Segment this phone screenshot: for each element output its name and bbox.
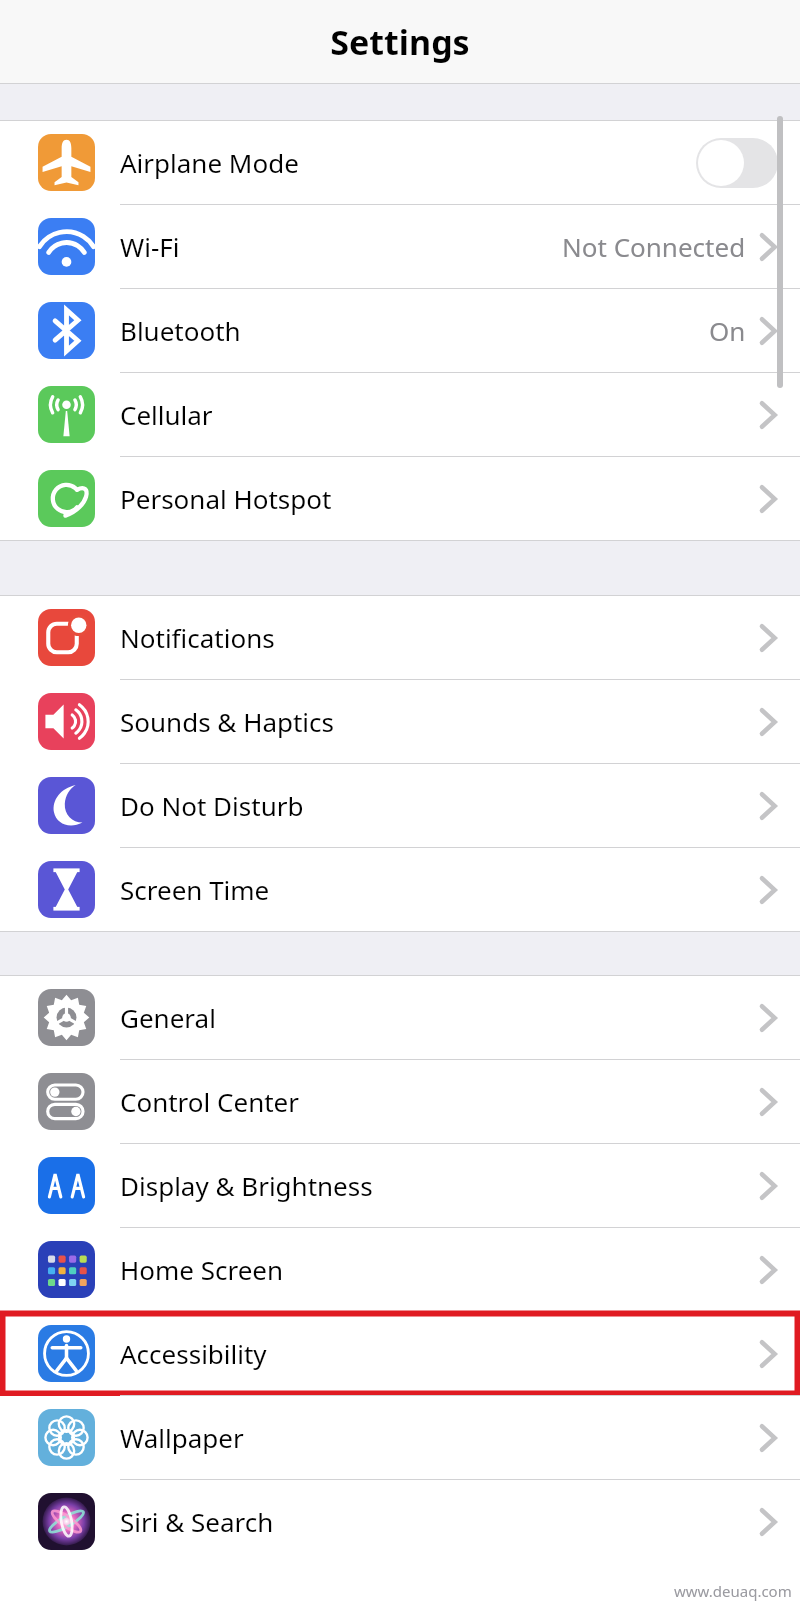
staticText: Not Connected <box>562 229 746 264</box>
staticText: Cellular <box>120 397 213 432</box>
staticText: Wallpaper <box>120 1420 244 1455</box>
button[interactable]: Home Screen <box>0 1228 800 1311</box>
staticText: Settings <box>330 19 470 65</box>
staticText: Home Screen <box>120 1252 284 1287</box>
button[interactable]: Cellular <box>0 373 800 456</box>
staticText: Airplane Mode <box>120 145 299 180</box>
staticText: www.deuaq.com <box>674 1581 792 1601</box>
button[interactable]: Screen Time <box>0 848 800 931</box>
button[interactable]: Personal Hotspot <box>0 457 800 540</box>
button[interactable]: Wallpaper <box>0 1396 800 1479</box>
staticText: General <box>120 1000 216 1035</box>
staticText: On <box>709 313 746 348</box>
button[interactable]: Airplane Mode <box>0 121 800 204</box>
staticText: Notifications <box>120 620 275 655</box>
staticText: Bluetooth <box>120 313 241 348</box>
staticText: Do Not Disturb <box>120 788 304 823</box>
staticText: Display & Brightness <box>120 1168 373 1203</box>
button[interactable]: Sounds & Haptics <box>0 680 800 763</box>
staticText: Siri & Search <box>120 1504 274 1539</box>
staticText: Screen Time <box>120 872 270 907</box>
button[interactable]: Bluetooth <box>0 289 800 372</box>
button[interactable]: Notifications <box>0 596 800 679</box>
staticText: Wi-Fi <box>120 229 180 264</box>
button[interactable]: Wi-Fi <box>0 205 800 288</box>
button[interactable]: Siri & Search <box>0 1480 800 1563</box>
button[interactable]: General <box>0 976 800 1059</box>
staticText: Personal Hotspot <box>120 481 332 516</box>
button[interactable]: Airplane Mode toggle <box>696 138 778 188</box>
button[interactable]: Accessibility <box>0 1312 800 1395</box>
staticText: Accessibility <box>120 1336 267 1371</box>
staticText: Control Center <box>120 1084 299 1119</box>
button[interactable]: Control Center <box>0 1060 800 1143</box>
button[interactable]: Display & Brightness <box>0 1144 800 1227</box>
staticText: Sounds & Haptics <box>120 704 335 739</box>
button[interactable]: Do Not Disturb <box>0 764 800 847</box>
